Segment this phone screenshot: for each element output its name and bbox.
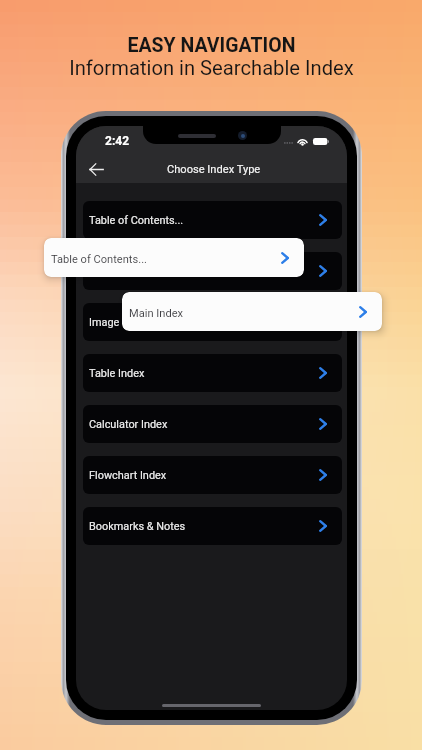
staticText: Table of Contents... [89, 214, 184, 227]
button[interactable]: Image Index [83, 303, 342, 341]
staticText: Information in Searchable Index [69, 56, 354, 80]
button[interactable]: Table of Contents... [44, 238, 304, 277]
staticText: Table of Contents... [51, 253, 147, 266]
staticText: Reference Index [89, 265, 167, 278]
staticText: Image Index [89, 316, 149, 329]
staticText: Bookmarks & Notes [89, 520, 186, 533]
button[interactable]: Table of Contents... [83, 201, 342, 239]
staticText: Flowchart Index [89, 469, 167, 482]
button[interactable]: Back [85, 158, 108, 181]
staticText: Main Index [129, 307, 184, 320]
button[interactable]: Table Index [83, 354, 342, 392]
button[interactable]: Main Index [122, 292, 382, 331]
staticText: EASY NAVIGATION [127, 34, 296, 57]
staticText: 2:42 [105, 134, 130, 148]
button[interactable]: Reference Index [83, 252, 342, 290]
staticText: Table Index [89, 367, 145, 380]
staticText: Choose Index Type [167, 163, 261, 176]
staticText: Calculator Index [89, 418, 168, 431]
button[interactable]: Calculator Index [83, 405, 342, 443]
button[interactable]: Bookmarks & Notes [83, 507, 342, 545]
button[interactable]: Flowchart Index [83, 456, 342, 494]
